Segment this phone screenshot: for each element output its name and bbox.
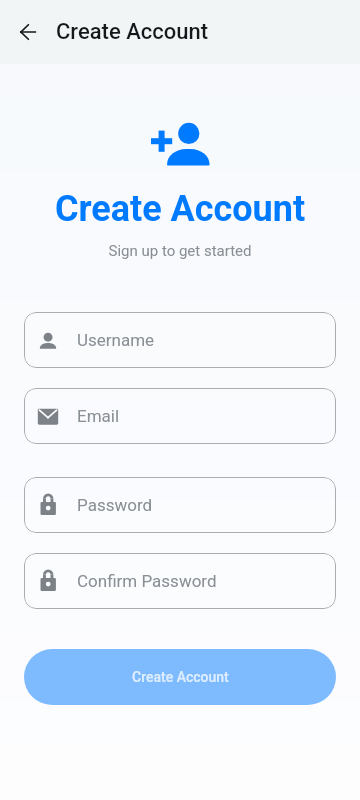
staticText: Create Account — [0, 188, 360, 230]
staticText: Sign up to get started — [0, 242, 360, 260]
button[interactable]: Confirm Password — [24, 553, 336, 609]
staticText: Email — [77, 406, 120, 426]
staticText: Create Account — [132, 669, 229, 685]
staticText: Username — [77, 330, 155, 350]
button[interactable]: Back — [8, 12, 48, 52]
staticText: Confirm Password — [77, 571, 217, 591]
button[interactable]: Create Account — [24, 649, 336, 705]
button[interactable]: Password — [24, 477, 336, 533]
staticText: Password — [77, 495, 153, 515]
button[interactable]: Email — [24, 388, 336, 444]
button[interactable]: Username — [24, 312, 336, 368]
staticText: Create Account — [56, 19, 209, 45]
